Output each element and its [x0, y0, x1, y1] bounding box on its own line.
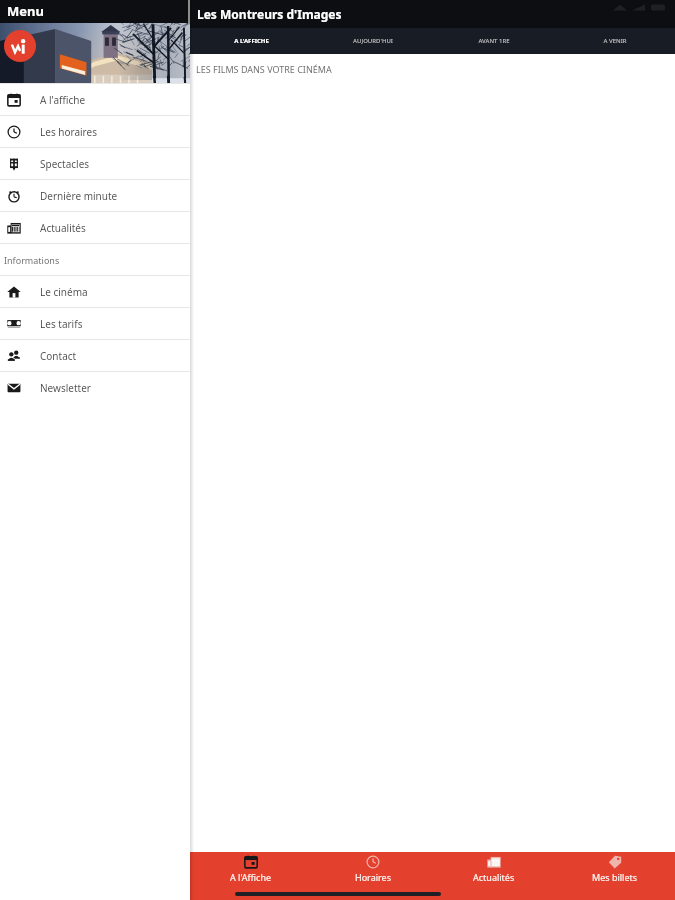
staticText: Mes billets	[592, 871, 638, 883]
staticText: Les Montreurs d'Images	[197, 6, 342, 22]
button[interactable]: Les Montreurs d'Images - accueil	[0, 23, 190, 83]
staticText: Spectacles	[40, 157, 90, 171]
button[interactable]: Horaires	[312, 852, 433, 888]
button[interactable]: A L'AFFICHE	[190, 28, 312, 54]
button[interactable]: Spectacles	[0, 148, 190, 179]
button[interactable]: Mes billets	[554, 852, 675, 888]
button[interactable]: Les horaires	[0, 116, 190, 147]
button[interactable]: Actualités	[0, 212, 190, 243]
staticText: Menu	[7, 2, 44, 20]
staticText: A VENIR	[603, 37, 627, 45]
button[interactable]: A VENIR	[554, 28, 675, 54]
button[interactable]: Dernière minute	[0, 180, 190, 211]
button[interactable]: Contact	[0, 340, 190, 371]
button[interactable]: Le cinéma	[0, 276, 190, 307]
staticText: Actualités	[473, 871, 515, 883]
staticText: LES FILMS DANS VOTRE CINÉMA	[196, 63, 332, 75]
staticText: Dernière minute	[40, 189, 118, 203]
staticText: Horaires	[355, 871, 391, 883]
staticText: Actualités	[40, 221, 86, 235]
button[interactable]: A l'Affiche	[190, 852, 312, 888]
staticText: Newsletter	[40, 381, 91, 395]
button[interactable]: A l'affiche	[0, 84, 190, 115]
button[interactable]: Newsletter	[0, 372, 190, 403]
button[interactable]: Actualités	[433, 852, 554, 888]
staticText: Contact	[40, 349, 77, 363]
staticText: Les horaires	[40, 125, 97, 139]
staticText: A L'AFFICHE	[234, 37, 269, 45]
staticText: Informations	[4, 254, 60, 266]
staticText: A l'Affiche	[230, 871, 272, 883]
staticText: AVANT 1RE	[478, 37, 510, 45]
staticText: Les tarifs	[40, 317, 83, 331]
button[interactable]: AUJOURD'HUI	[312, 28, 433, 54]
button[interactable]: AVANT 1RE	[433, 28, 554, 54]
staticText: Le cinéma	[40, 285, 88, 299]
button[interactable]: Les tarifs	[0, 308, 190, 339]
staticText: A l'affiche	[40, 93, 86, 107]
staticText: AUJOURD'HUI	[353, 37, 393, 45]
